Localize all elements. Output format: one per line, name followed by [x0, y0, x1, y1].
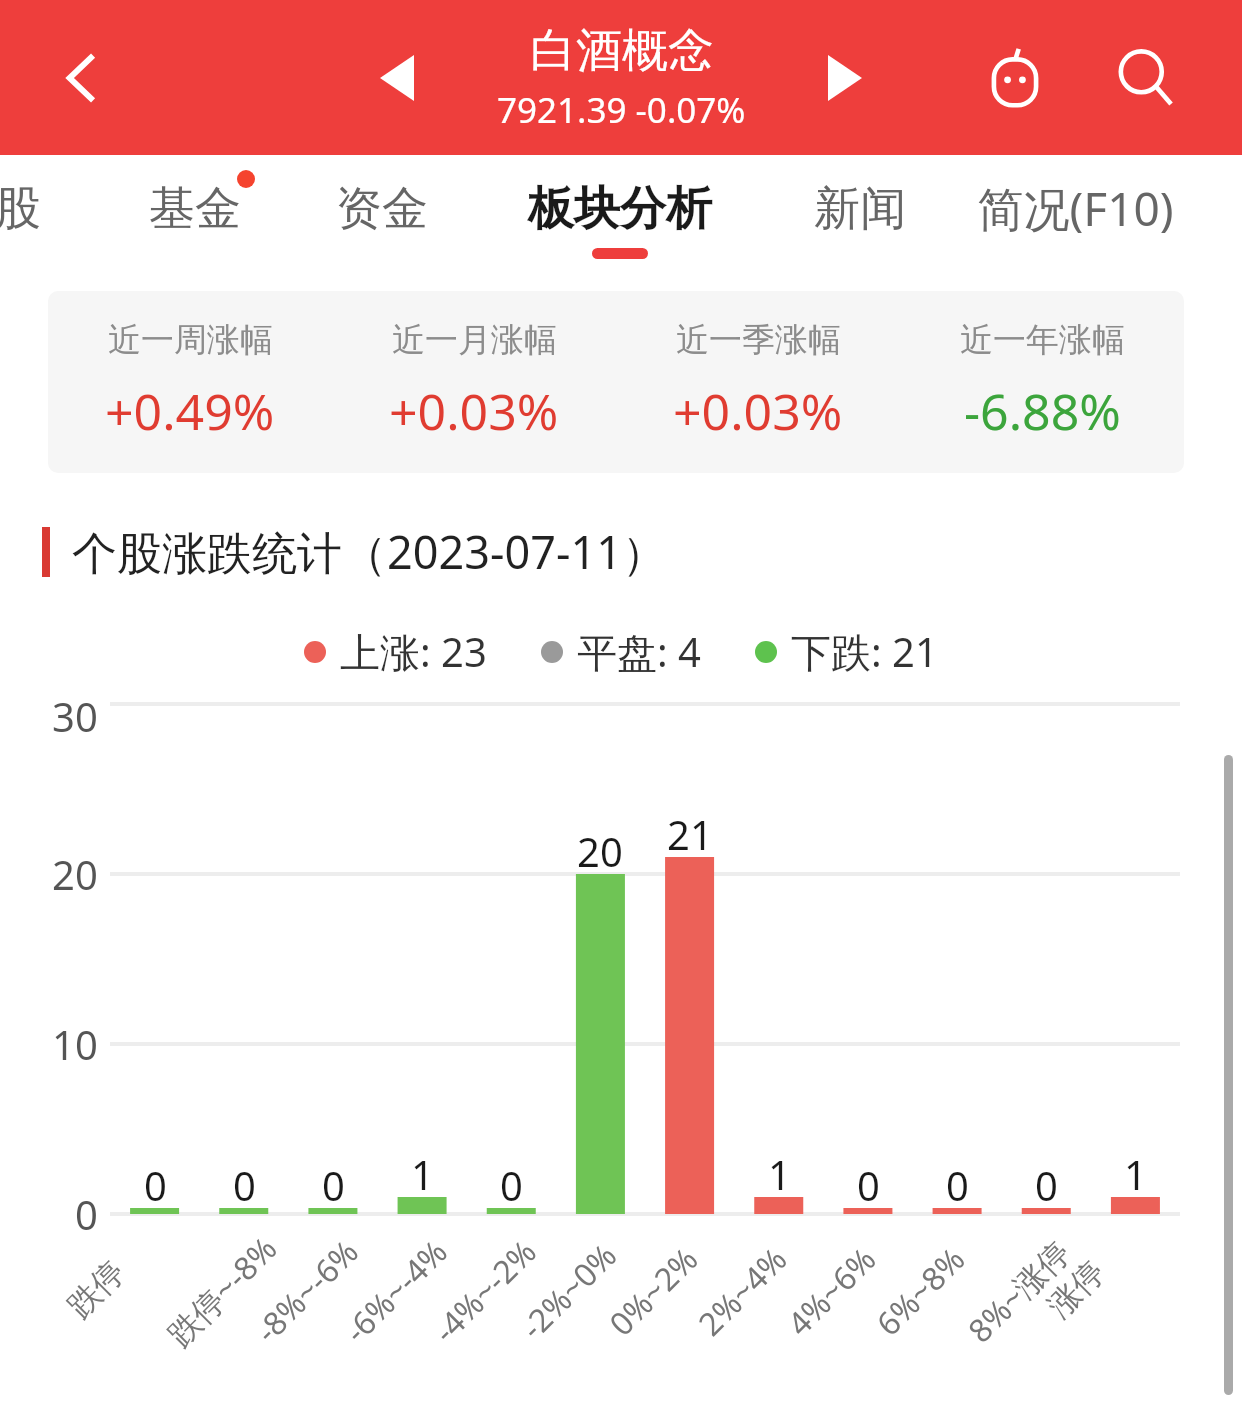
staticText: 6%~8% [866, 1237, 975, 1345]
staticText: 新闻 [814, 180, 906, 238]
staticText: -8%~-6% [245, 1230, 368, 1352]
staticText: 21 [667, 807, 713, 861]
staticText: 0 [946, 1158, 969, 1212]
staticText: 0 [75, 1187, 98, 1241]
staticText: 2%~4% [688, 1237, 797, 1345]
staticText: 下跌: 21 [791, 624, 938, 679]
button[interactable]: AI assistant [965, 28, 1065, 128]
staticText: 资金 [336, 180, 428, 238]
staticText: 平盘: 4 [577, 624, 701, 679]
staticText: 基金 [149, 180, 241, 238]
staticText: -2%~0% [511, 1233, 626, 1349]
staticText: 涨停 [1039, 1252, 1113, 1326]
staticText: 10 [52, 1017, 98, 1071]
button[interactable]: 股 [0, 155, 53, 283]
staticText: 20 [577, 824, 623, 878]
staticText: 跌停 [59, 1252, 133, 1326]
staticText: 跌停~-8% [158, 1227, 286, 1355]
staticText: 0 [500, 1158, 523, 1212]
staticText: -4%~-2% [423, 1230, 546, 1352]
staticText: 8%~涨停 [958, 1230, 1080, 1352]
staticText: 个股涨跌统计（2023-07-11） [72, 521, 667, 582]
staticText: 近一年涨幅 [960, 319, 1125, 361]
staticText: 1 [411, 1147, 434, 1201]
staticText: 简况(F10) [977, 177, 1174, 240]
staticText: 近一周涨幅 [108, 319, 273, 361]
button[interactable]: 简况(F10) [907, 155, 1242, 283]
staticText: +0.03% [389, 377, 559, 445]
staticText: 0 [322, 1158, 345, 1212]
button[interactable]: Previous [352, 33, 442, 123]
staticText: 7921.39 -0.07% [497, 86, 746, 134]
staticText: +0.49% [105, 377, 275, 445]
button[interactable]: 新闻 [812, 155, 908, 283]
button[interactable]: 基金 [147, 155, 243, 283]
button[interactable]: Back [40, 35, 126, 121]
staticText: 0 [233, 1158, 256, 1212]
staticText: 0 [857, 1158, 880, 1212]
staticText: 近一季涨幅 [676, 319, 841, 361]
button[interactable]: 板块分析 [520, 155, 720, 283]
staticText: 板块分析 [528, 180, 712, 238]
staticText: -6%~-4% [334, 1230, 457, 1352]
staticText: 1 [768, 1147, 791, 1201]
button[interactable]: Search [1095, 28, 1195, 128]
staticText: 上涨: 23 [340, 624, 487, 679]
staticText: 20 [52, 847, 98, 901]
staticText: 近一月涨幅 [392, 319, 557, 361]
staticText: +0.03% [673, 377, 843, 445]
staticText: 1 [1124, 1147, 1147, 1201]
staticText: -6.88% [964, 377, 1121, 445]
staticText: 0%~2% [599, 1237, 708, 1345]
button[interactable]: 资金 [334, 155, 430, 283]
staticText: 白酒概念 [530, 22, 714, 80]
staticText: 股 [0, 180, 41, 238]
staticText: 0 [144, 1158, 167, 1212]
staticText: 4%~6% [777, 1237, 886, 1345]
staticText: 0 [1035, 1158, 1058, 1212]
staticText: 30 [52, 689, 98, 743]
button[interactable]: 近一周涨幅 [48, 291, 1184, 473]
button[interactable]: Next [800, 33, 890, 123]
